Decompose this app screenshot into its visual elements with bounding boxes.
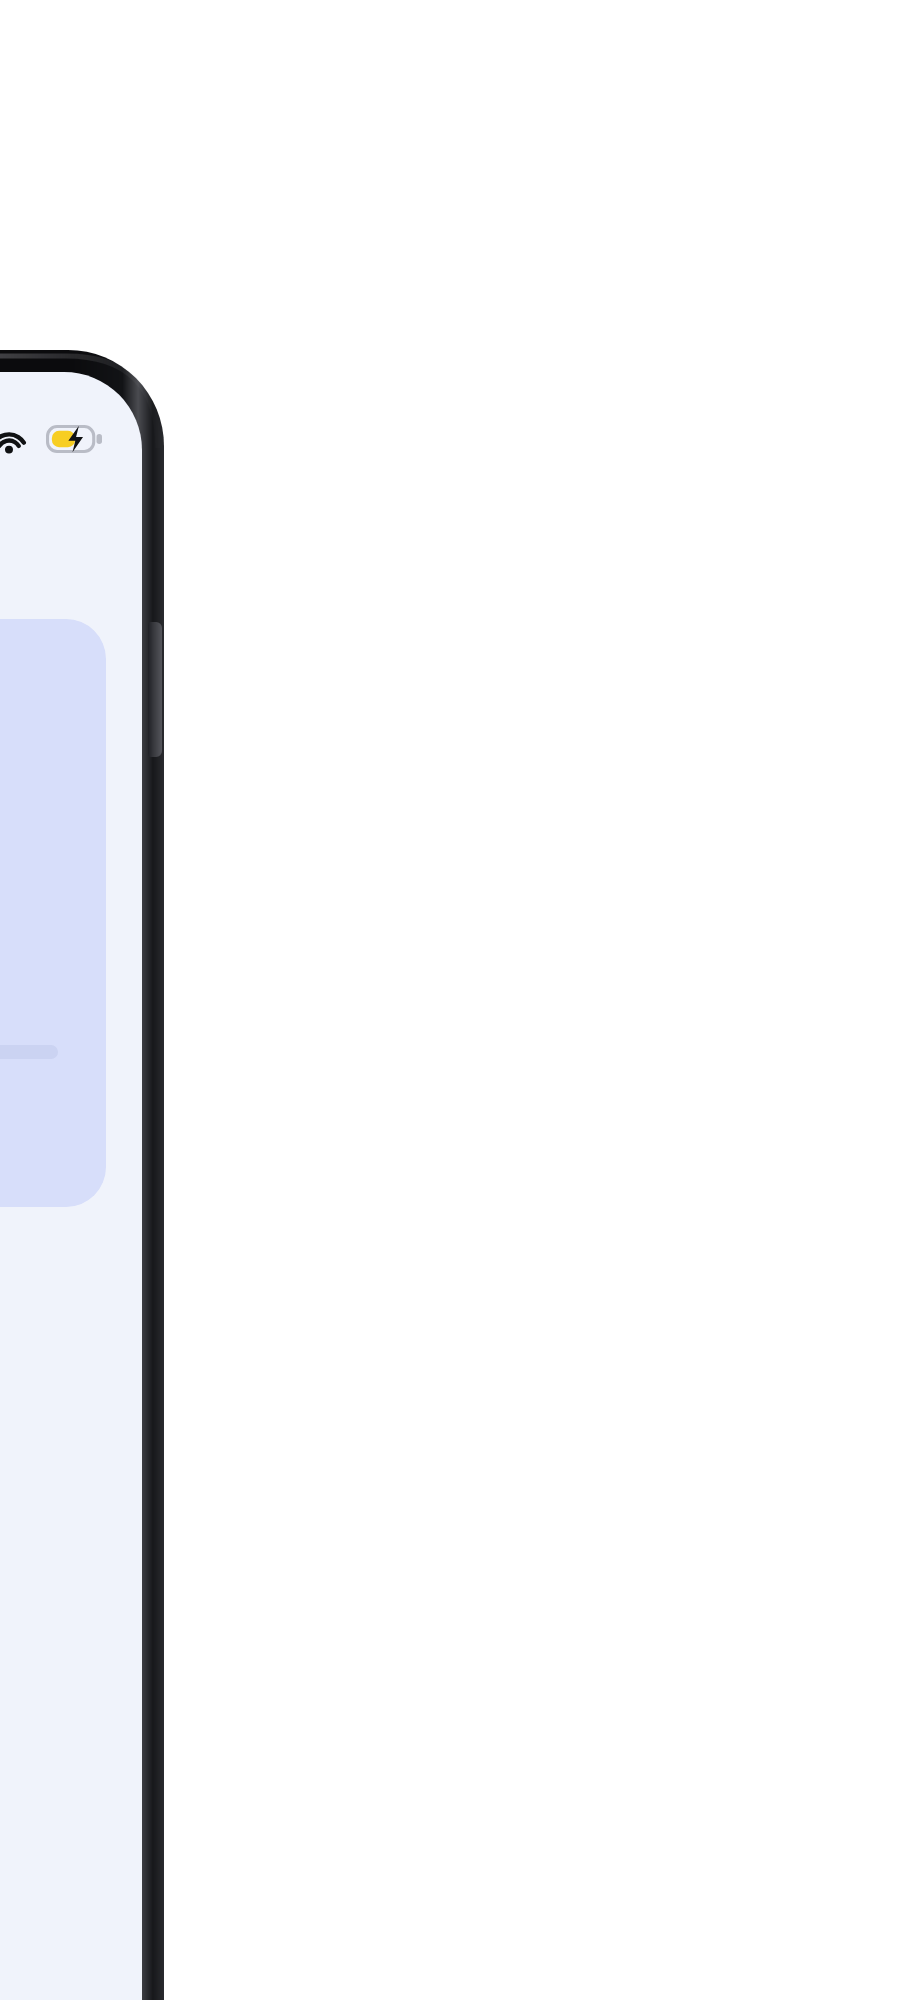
other: Battery charging xyxy=(46,425,102,453)
other: Power button xyxy=(148,622,162,757)
